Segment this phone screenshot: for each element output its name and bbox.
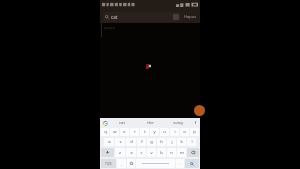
staticText: g [150,139,153,145]
staticText: a [108,139,111,145]
staticText: . [179,161,181,166]
staticText: m [180,150,184,156]
button[interactable]: cat [108,118,136,127]
button[interactable]: Result thumbnail [194,105,205,116]
button[interactable]: c [137,148,146,157]
button[interactable]: Emoji [127,159,135,168]
staticText: j [171,139,173,145]
staticText: n [170,150,173,156]
button[interactable]: j [167,138,176,146]
staticText: f [141,139,143,145]
staticText: i [174,129,176,135]
staticText: Hapus [184,14,197,19]
button[interactable]: t [140,128,149,136]
staticText: cat [111,14,118,20]
staticText: h [160,139,163,145]
button[interactable]: Period [176,159,184,168]
button[interactable]: z [115,148,125,157]
button[interactable]: d [126,138,136,146]
staticText: k [180,139,183,145]
staticText: d [130,139,133,145]
button[interactable]: g [147,138,156,146]
button[interactable]: cat [103,12,181,22]
button[interactable]: q [101,128,109,136]
staticText: the [147,120,154,126]
button[interactable]: Backspace [187,148,199,157]
button[interactable]: v [147,148,156,157]
button[interactable]: b [157,148,166,157]
staticText: t [144,129,146,135]
button[interactable]: a [104,138,114,146]
button[interactable]: song [164,118,192,127]
button[interactable]: Comma [117,159,126,168]
button[interactable]: s [115,138,125,146]
button[interactable]: l [187,138,196,146]
staticText: w [113,129,117,135]
staticText: z [119,150,121,156]
staticText: y [153,129,156,135]
button[interactable]: r [130,128,139,136]
button[interactable]: Google search [102,120,108,126]
staticText: query [104,25,115,30]
staticText: q [104,129,107,135]
staticText: l [191,139,193,145]
staticText: cat [119,120,125,126]
button[interactable]: n [167,148,176,157]
button[interactable]: u [160,128,169,136]
staticText: r [134,129,136,135]
staticText: c [140,150,143,156]
staticText: b [160,150,163,156]
staticText: p [193,129,196,135]
button[interactable]: k [177,138,186,146]
button[interactable]: the [136,118,164,127]
button[interactable]: Shift [101,148,114,157]
staticText: s [119,139,122,145]
button[interactable]: ?123 [101,159,116,168]
staticText: song [173,120,183,126]
button[interactable]: More suggestions [192,118,198,127]
button[interactable]: y [150,128,159,136]
button[interactable]: e [120,128,129,136]
button[interactable]: w [110,128,119,136]
button[interactable]: i [170,128,179,136]
staticText: o [183,129,186,135]
staticText: e [123,129,126,135]
button[interactable]: Space [136,159,175,168]
button[interactable]: x [126,148,136,157]
button[interactable]: p [190,128,199,136]
button[interactable]: m [177,148,186,157]
button[interactable]: Hapus [183,13,198,20]
staticText: u [163,129,166,135]
button[interactable]: h [157,138,166,146]
staticText: v [150,150,153,156]
staticText: ?123 [105,162,112,166]
staticText: , [121,161,123,166]
button[interactable]: f [137,138,146,146]
button[interactable]: Search [185,159,199,168]
button[interactable]: o [180,128,189,136]
staticText: x [130,150,133,156]
